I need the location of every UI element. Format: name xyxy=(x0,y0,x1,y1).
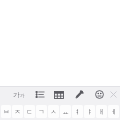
button[interactable]: Close toolbar xyxy=(106,87,120,102)
button[interactable]: ㅐ xyxy=(96,105,107,118)
button[interactable]: ㅅ xyxy=(48,105,59,118)
button[interactable]: ㅑ xyxy=(84,105,95,118)
button[interactable]: ㅕ xyxy=(72,105,83,118)
button[interactable]: Insert table xyxy=(52,87,66,102)
button[interactable]: ㅈ xyxy=(12,105,23,118)
staticText: ㅑ xyxy=(86,108,93,116)
button[interactable]: ㅂ xyxy=(1,105,11,118)
staticText: ㅐ xyxy=(98,108,105,116)
button[interactable]: Bullet list xyxy=(32,87,46,102)
staticText: 가 xyxy=(20,93,25,99)
button[interactable]: ㄱ xyxy=(36,105,47,118)
staticText: ㅈ xyxy=(14,108,21,116)
button[interactable]: ㄷ xyxy=(24,105,35,118)
button[interactable]: ㅔ xyxy=(108,105,119,118)
staticText: ㅅ xyxy=(50,108,57,116)
button[interactable]: Insert emoji xyxy=(92,87,106,102)
staticText: ㅛ xyxy=(62,108,69,116)
staticText: ㅂ xyxy=(3,108,10,116)
staticText: ㅔ xyxy=(110,108,117,116)
button[interactable]: ㅛ xyxy=(60,105,71,118)
staticText: 가 xyxy=(13,91,20,99)
button[interactable]: Font size xyxy=(12,87,26,102)
staticText: ㄷ xyxy=(26,108,33,116)
button[interactable]: Attach file xyxy=(72,87,86,102)
staticText: ㅕ xyxy=(74,108,81,116)
staticText: ㄱ xyxy=(38,108,45,116)
